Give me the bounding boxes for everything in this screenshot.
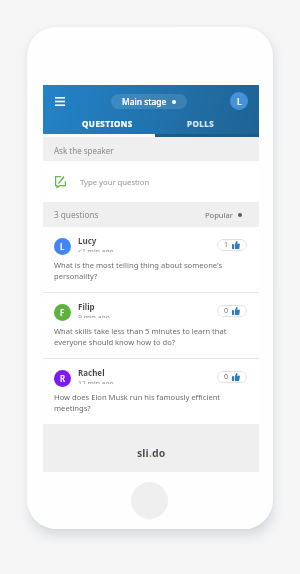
staticText: Filip (78, 301, 95, 312)
button[interactable]: QUESTIONS (62, 114, 153, 132)
button[interactable]: L (43, 227, 259, 292)
button[interactable]: F (43, 293, 259, 358)
staticText: 0 (224, 372, 229, 382)
staticText: QUESTIONS (82, 118, 133, 129)
button[interactable]: Upvote (217, 371, 247, 383)
staticText: <1 min ago (78, 247, 114, 252)
button[interactable]: Open navigation menu (50, 91, 70, 111)
staticText: Lucy (78, 235, 97, 246)
button[interactable]: Upvote (217, 239, 247, 251)
staticText: 0 (224, 306, 229, 316)
staticText: . (149, 446, 152, 460)
staticText: What is the most telling thing about som… (54, 260, 223, 281)
staticText: F (60, 307, 65, 318)
staticText: How does Elon Musk run his famously effi… (54, 392, 221, 413)
staticText: Main stage (122, 96, 167, 107)
staticText: Popular (205, 210, 233, 220)
button[interactable]: Main stage (111, 94, 187, 109)
staticText: POLLS (187, 118, 215, 129)
button[interactable]: POLLS (155, 114, 247, 132)
staticText: Ask the speaker (54, 145, 114, 156)
button[interactable]: R (43, 359, 259, 424)
staticText: R (60, 373, 66, 384)
staticText: sli (137, 446, 149, 460)
button[interactable]: Type your question (43, 161, 259, 202)
button[interactable]: Popular (205, 210, 242, 220)
staticText: Type your question (80, 177, 150, 187)
staticText: do (152, 446, 166, 460)
staticText: 1 (224, 240, 229, 250)
staticText: L (237, 95, 242, 107)
staticText: 9 min ago (78, 313, 110, 318)
staticText: What skills take less than 5 minutes to … (54, 326, 227, 347)
button[interactable]: Upvote (217, 305, 247, 317)
staticText: Rachel (78, 367, 105, 378)
button[interactable]: Account (230, 92, 248, 110)
staticText: 3 questions (54, 209, 99, 220)
staticText: 12 min ago (78, 379, 114, 384)
staticText: L (60, 241, 65, 252)
